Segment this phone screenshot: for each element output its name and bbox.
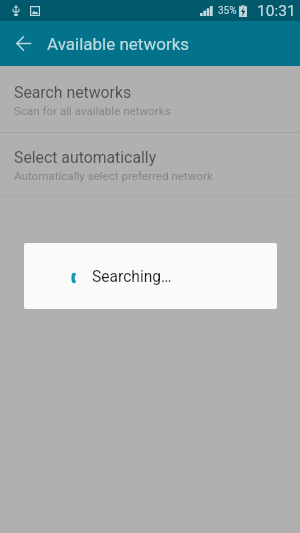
button[interactable]: Select automatically [0, 133, 300, 195]
staticText: 35% [218, 5, 237, 17]
staticText: Available networks [47, 34, 190, 54]
staticText: Scan for all available networks [14, 104, 171, 118]
staticText: Automatically select preferred network [14, 169, 213, 183]
staticText: Select automatically [14, 148, 157, 167]
staticText: Searching… [92, 268, 172, 286]
staticText: 10:31 [257, 2, 296, 20]
staticText: Search networks [14, 83, 132, 102]
button[interactable]: Search networks [0, 66, 300, 132]
button[interactable]: Back [1, 21, 46, 66]
